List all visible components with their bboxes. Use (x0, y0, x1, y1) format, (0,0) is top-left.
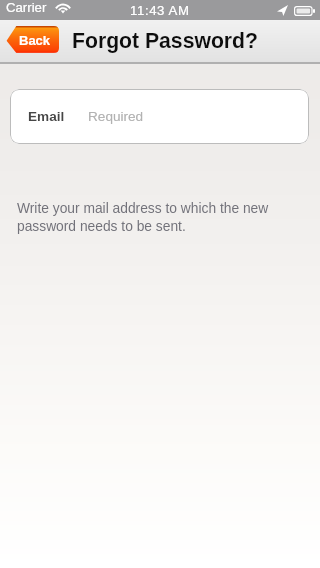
staticText: Write your mail address to which the new… (17, 201, 280, 234)
staticText: 11:43 AM (130, 3, 190, 18)
staticText: Back (19, 33, 51, 48)
staticText: Forgot Password? (72, 29, 258, 53)
staticText: Required (88, 109, 144, 124)
staticText: Carrier (6, 0, 47, 15)
button[interactable]: Back (6, 26, 59, 53)
button[interactable]: Email (10, 89, 309, 144)
staticText: Email (28, 109, 65, 124)
